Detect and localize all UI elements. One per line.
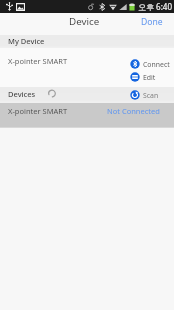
staticText: X-pointer SMART <box>8 56 68 66</box>
button[interactable]: Edit <box>130 72 174 82</box>
button[interactable]: Done <box>131 15 174 33</box>
staticText: Edit <box>143 73 156 82</box>
staticText: Not Connected <box>107 106 160 116</box>
button[interactable]: Connect <box>130 59 174 69</box>
staticText: X-pointer SMART <box>8 106 68 116</box>
staticText: Device <box>69 15 100 28</box>
button[interactable]: Scan <box>130 90 174 100</box>
button[interactable]: X-pointer SMART <box>0 103 174 127</box>
staticText: Scan <box>143 91 159 100</box>
staticText: 오후 6:40 <box>138 1 172 12</box>
staticText: Connect <box>143 60 170 69</box>
staticText: My Device <box>8 36 45 46</box>
staticText: Done <box>141 16 163 28</box>
staticText: Devices <box>8 89 36 99</box>
